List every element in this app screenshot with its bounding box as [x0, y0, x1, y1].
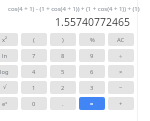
button[interactable]: 0: [21, 97, 47, 110]
staticText: AC: [117, 36, 125, 44]
button[interactable]: eˣ: [0, 97, 18, 110]
staticText: 5: [61, 68, 65, 76]
staticText: √: [3, 84, 7, 91]
staticText: +: [119, 100, 123, 108]
staticText: cos(4 + 1) - (1 + cos(4 + 1)) + (1 + cos…: [8, 5, 142, 13]
button[interactable]: 7: [21, 49, 47, 62]
staticText: 9: [90, 52, 94, 60]
staticText: 2: [61, 84, 65, 92]
staticText: %: [90, 36, 95, 44]
staticText: ×: [119, 68, 123, 76]
staticText: ln: [2, 52, 8, 60]
staticText: x²: [2, 36, 8, 44]
button[interactable]: +: [108, 97, 134, 110]
staticText: .: [62, 100, 64, 108]
staticText: 7: [32, 52, 36, 60]
staticText: 3: [90, 84, 94, 92]
staticText: =: [90, 100, 94, 108]
button[interactable]: −: [108, 81, 134, 94]
staticText: (: [33, 36, 35, 44]
button[interactable]: =: [79, 97, 105, 110]
staticText: 1: [32, 84, 36, 92]
button[interactable]: ln: [0, 49, 18, 62]
button[interactable]: 8: [50, 49, 76, 62]
button[interactable]: 3: [79, 81, 105, 94]
button[interactable]: 5: [50, 65, 76, 78]
button[interactable]: 6: [79, 65, 105, 78]
button[interactable]: AC: [108, 33, 134, 46]
button[interactable]: %: [79, 33, 105, 46]
staticText: ÷: [119, 52, 123, 60]
button[interactable]: 1: [21, 81, 47, 94]
button[interactable]: 9: [79, 49, 105, 62]
staticText: 6: [90, 68, 94, 76]
button[interactable]: ): [50, 33, 76, 46]
staticText: log: [0, 68, 9, 76]
staticText: 1.55740772465: [0, 15, 130, 29]
staticText: −: [119, 84, 123, 92]
button[interactable]: ×: [108, 65, 134, 78]
staticText: 0: [32, 100, 36, 108]
button[interactable]: ÷: [108, 49, 134, 62]
button[interactable]: 4: [21, 65, 47, 78]
button[interactable]: log: [0, 65, 18, 78]
staticText: 8: [61, 52, 65, 60]
button[interactable]: (: [21, 33, 47, 46]
button[interactable]: 2: [50, 81, 76, 94]
button[interactable]: √: [0, 81, 18, 94]
staticText: eˣ: [2, 100, 8, 108]
staticText: ): [62, 36, 64, 44]
staticText: 4: [32, 68, 36, 76]
button[interactable]: x²: [0, 33, 18, 46]
